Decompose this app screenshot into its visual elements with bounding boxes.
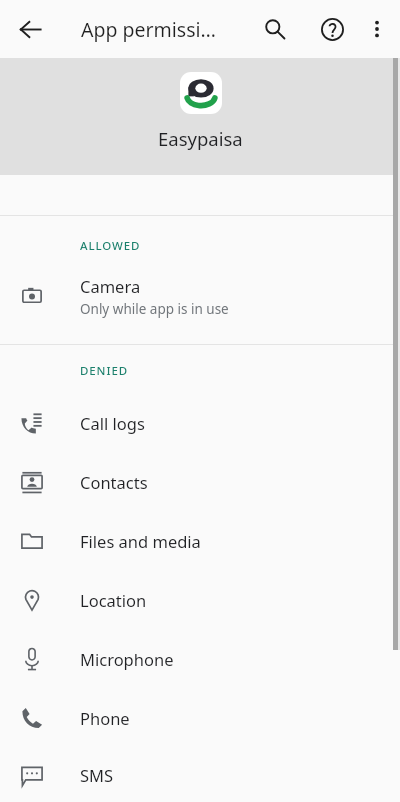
staticText: SMS bbox=[80, 764, 114, 786]
staticText: ALLOWED bbox=[80, 238, 141, 254]
button[interactable]: Files and media bbox=[0, 511, 400, 570]
button[interactable]: Phone bbox=[0, 688, 400, 747]
staticText: Call logs bbox=[80, 412, 145, 434]
staticText: Contacts bbox=[80, 471, 148, 493]
staticText: App permissi… bbox=[81, 16, 216, 43]
button[interactable]: Back bbox=[6, 5, 54, 53]
staticText: DENIED bbox=[80, 363, 129, 379]
button[interactable]: Call logs bbox=[0, 393, 400, 452]
staticText: Camera bbox=[80, 275, 141, 297]
staticText: Files and media bbox=[80, 530, 201, 552]
staticText: Easypaisa bbox=[158, 126, 243, 151]
button[interactable]: Camera bbox=[0, 270, 400, 322]
button[interactable]: Microphone bbox=[0, 629, 400, 688]
button[interactable]: SMS bbox=[0, 747, 400, 802]
button[interactable]: Help bbox=[308, 5, 356, 53]
staticText: Microphone bbox=[80, 648, 174, 670]
button[interactable]: Search bbox=[251, 5, 299, 53]
staticText: Only while app is in use bbox=[80, 300, 229, 318]
button[interactable]: Location bbox=[0, 570, 400, 629]
button[interactable]: Contacts bbox=[0, 452, 400, 511]
staticText: Phone bbox=[80, 707, 130, 729]
staticText: Location bbox=[80, 589, 147, 611]
button[interactable]: More options bbox=[353, 5, 400, 53]
